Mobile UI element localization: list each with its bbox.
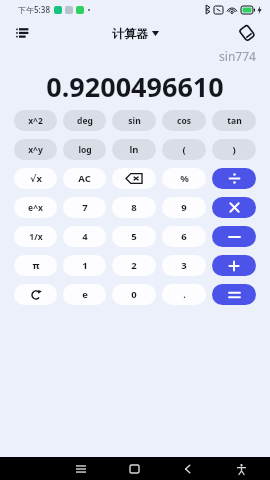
button[interactable]: e^x	[14, 197, 57, 218]
button[interactable]: 计算器	[112, 26, 159, 41]
staticText: cos	[177, 115, 191, 127]
button[interactable]: sin	[112, 110, 156, 131]
staticText: deg	[77, 115, 93, 127]
staticText: 下午5:38	[18, 4, 50, 15]
staticText: 9	[181, 201, 187, 214]
staticText: 8	[131, 201, 137, 214]
staticText: 4	[82, 230, 88, 243]
other: Backspace	[126, 173, 142, 184]
button[interactable]: 5	[112, 226, 156, 247]
staticText: 6	[181, 230, 187, 243]
button[interactable]: cos	[162, 110, 206, 131]
staticText: 5	[131, 230, 137, 243]
staticText: 计算器	[112, 26, 148, 41]
button[interactable]: %	[162, 168, 206, 189]
button[interactable]: 7	[63, 197, 106, 218]
button[interactable]: 2	[112, 255, 156, 276]
other: Add	[228, 260, 240, 272]
button[interactable]: Reset	[14, 284, 57, 305]
staticText: 3	[181, 259, 187, 272]
staticText: 1	[82, 259, 88, 272]
staticText: sin774	[219, 48, 256, 64]
button[interactable]: 0	[112, 284, 156, 305]
staticText: x^2	[28, 115, 43, 127]
button[interactable]: Rotate screen	[234, 20, 260, 46]
button[interactable]: )	[212, 139, 256, 160]
button[interactable]: 6	[162, 226, 206, 247]
button[interactable]: .	[162, 284, 206, 305]
button[interactable]: deg	[63, 110, 106, 131]
other: Divide	[228, 172, 241, 185]
button[interactable]: π	[14, 255, 57, 276]
button[interactable]: tan	[212, 110, 256, 131]
staticText: 0.9200496610	[46, 68, 224, 105]
other: Subtract	[228, 234, 241, 240]
button[interactable]: x^y	[14, 139, 57, 160]
button[interactable]: Back	[177, 458, 199, 480]
button[interactable]: 1/x	[14, 226, 57, 247]
button[interactable]: 4	[63, 226, 106, 247]
other: Equals	[228, 291, 241, 299]
staticText: AC	[78, 172, 91, 185]
staticText: ln	[129, 143, 139, 156]
staticText: %	[180, 172, 189, 185]
staticText: 2	[131, 259, 137, 272]
button[interactable]: History	[10, 20, 36, 46]
button[interactable]: log	[63, 139, 106, 160]
button[interactable]: Backspace	[112, 168, 156, 189]
staticText: 0	[131, 288, 137, 301]
button[interactable]: x^2	[14, 110, 57, 131]
staticText: )	[232, 143, 236, 156]
staticText: 7	[82, 201, 88, 214]
staticText: e	[82, 288, 88, 301]
button[interactable]: Recents	[70, 458, 92, 480]
button[interactable]: Add	[212, 255, 256, 276]
staticText: log	[78, 144, 92, 156]
button[interactable]: Divide	[212, 168, 256, 189]
button[interactable]: Multiply	[212, 197, 256, 218]
button[interactable]: 9	[162, 197, 206, 218]
staticText: tan	[227, 115, 242, 127]
button[interactable]: Equals	[212, 284, 256, 305]
staticText: x^y	[28, 144, 43, 156]
other: Multiply	[229, 202, 240, 213]
staticText: .	[183, 288, 186, 301]
staticText: sin	[128, 115, 141, 127]
button[interactable]: 8	[112, 197, 156, 218]
button[interactable]: e	[63, 284, 106, 305]
other: Reset	[31, 290, 41, 300]
button[interactable]: √x	[14, 168, 57, 189]
button[interactable]: AC	[63, 168, 106, 189]
button[interactable]: Accessibility	[230, 458, 252, 480]
button[interactable]: 1	[63, 255, 106, 276]
staticText: (	[182, 143, 186, 156]
staticText: π	[32, 259, 40, 272]
staticText: √x	[30, 172, 42, 185]
button[interactable]: ln	[112, 139, 156, 160]
button[interactable]: Subtract	[212, 226, 256, 247]
staticText: e^x	[28, 202, 43, 214]
staticText: 1/x	[29, 231, 43, 243]
button[interactable]: Home	[123, 458, 145, 480]
button[interactable]: 3	[162, 255, 206, 276]
button[interactable]: (	[162, 139, 206, 160]
